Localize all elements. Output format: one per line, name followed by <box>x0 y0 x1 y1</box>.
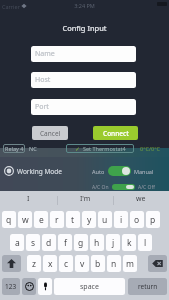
staticText: I <box>27 194 30 204</box>
button[interactable]: m <box>123 255 137 272</box>
button[interactable]: n <box>107 255 121 272</box>
button[interactable]: A/C toggle <box>112 184 135 190</box>
staticText: v <box>80 258 85 270</box>
staticText: m <box>126 258 134 270</box>
button[interactable]: Name <box>31 46 136 62</box>
staticText: Relay 4 <box>5 145 24 152</box>
button[interactable]: h <box>90 234 104 251</box>
staticText: 0°C/0°C <box>140 145 160 152</box>
button[interactable]: l <box>138 234 152 251</box>
staticText: we <box>136 194 146 204</box>
staticText: s <box>31 237 36 249</box>
button[interactable]: a <box>10 234 24 251</box>
button[interactable]: Shift <box>2 255 21 272</box>
button[interactable]: Working mode toggle <box>108 166 131 176</box>
button[interactable]: f <box>58 234 72 251</box>
button[interactable]: 123 <box>2 278 20 295</box>
staticText: k <box>127 237 132 249</box>
button[interactable]: g <box>74 234 88 251</box>
button[interactable]: space <box>54 278 125 295</box>
staticText: d <box>46 237 52 249</box>
staticText: z <box>32 258 36 270</box>
button[interactable]: Cancel <box>32 126 68 140</box>
staticText: Set Thermostat4 <box>83 145 126 152</box>
staticText: g <box>78 237 84 249</box>
button[interactable]: x <box>43 255 57 272</box>
button[interactable]: p <box>146 211 160 228</box>
staticText: r <box>55 214 59 226</box>
button[interactable]: b <box>91 255 105 272</box>
staticText: 3:24 PM <box>0 2 169 9</box>
staticText: 123 <box>5 282 17 291</box>
staticText: w <box>22 214 29 226</box>
button[interactable]: j <box>106 234 120 251</box>
button[interactable]: I <box>0 191 57 207</box>
button[interactable]: t <box>66 211 80 228</box>
staticText: h <box>94 237 100 249</box>
staticText: Name <box>35 49 55 59</box>
button[interactable]: d <box>42 234 56 251</box>
staticText: return <box>138 282 158 291</box>
button[interactable]: Host <box>31 72 136 88</box>
button[interactable]: w <box>18 211 32 228</box>
staticText: b <box>95 258 101 270</box>
staticText: Carrier <box>2 3 20 10</box>
button[interactable]: Backspace <box>148 255 167 272</box>
button[interactable]: we <box>113 191 169 207</box>
staticText: a <box>15 237 20 249</box>
staticText: ✓ <box>75 145 81 152</box>
staticText: y <box>87 214 92 226</box>
staticText: space <box>80 282 99 292</box>
button[interactable]: return <box>128 278 167 295</box>
staticText: A/C Off <box>138 184 155 190</box>
staticText: I'm <box>80 194 91 204</box>
staticText: p <box>150 214 156 226</box>
staticText: NC <box>29 145 37 152</box>
button[interactable]: s <box>26 234 40 251</box>
staticText: Port <box>35 102 49 112</box>
button[interactable]: u <box>98 211 112 228</box>
button[interactable]: Connect <box>93 126 138 140</box>
button[interactable]: Dictation <box>38 278 52 295</box>
button[interactable]: r <box>50 211 64 228</box>
staticText: Connect <box>103 129 129 138</box>
staticText: c <box>64 258 69 270</box>
staticText: A/C On <box>92 184 109 190</box>
staticText: Manual <box>134 168 154 175</box>
button[interactable]: c <box>59 255 73 272</box>
button[interactable]: I'm <box>57 191 113 207</box>
staticText: n <box>111 258 117 270</box>
button[interactable]: k <box>122 234 136 251</box>
staticText: u <box>102 214 108 226</box>
button[interactable]: Emoji <box>22 278 36 295</box>
staticText: q <box>6 214 12 226</box>
button[interactable]: o <box>130 211 144 228</box>
button[interactable]: e <box>34 211 48 228</box>
button[interactable]: v <box>75 255 89 272</box>
staticText: Auto <box>92 168 105 175</box>
staticText: Working Mode <box>17 167 62 176</box>
staticText: l <box>144 237 147 249</box>
staticText: Cancel <box>40 129 61 138</box>
staticText: Host <box>35 75 51 85</box>
button[interactable]: i <box>114 211 128 228</box>
staticText: x <box>48 258 53 270</box>
button[interactable]: y <box>82 211 96 228</box>
staticText: t <box>71 214 75 226</box>
button[interactable]: Port <box>31 99 136 115</box>
staticText: e <box>39 214 44 226</box>
button[interactable]: q <box>2 211 16 228</box>
staticText: Config Input <box>0 23 169 33</box>
staticText: o <box>134 214 140 226</box>
staticText: f <box>64 237 67 249</box>
staticText: i <box>120 214 123 226</box>
staticText: j <box>112 237 115 249</box>
button[interactable]: z <box>27 255 41 272</box>
